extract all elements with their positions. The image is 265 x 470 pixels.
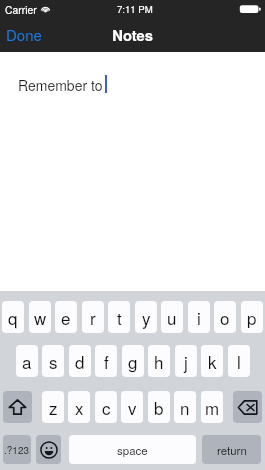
button[interactable]: j	[175, 345, 197, 377]
button[interactable]: space	[69, 435, 196, 464]
staticText: y	[142, 305, 151, 329]
staticText: r	[90, 305, 96, 329]
button[interactable]: w	[29, 301, 51, 333]
staticText: n	[180, 395, 190, 419]
staticText: Remember to	[18, 75, 103, 95]
button[interactable]: Backspace	[233, 391, 262, 423]
button[interactable]: e	[55, 301, 77, 333]
staticText: p	[247, 305, 257, 329]
staticText: i	[197, 305, 201, 329]
staticText: Notes	[0, 24, 265, 45]
button[interactable]: v	[121, 391, 143, 423]
button[interactable]: Done	[6, 24, 42, 45]
button[interactable]: y	[135, 301, 157, 333]
button[interactable]: z	[42, 391, 64, 423]
staticText: j	[184, 349, 188, 373]
button[interactable]: a	[16, 345, 38, 377]
staticText: a	[22, 349, 32, 373]
button[interactable]: o	[214, 301, 236, 333]
staticText: g	[128, 349, 138, 373]
button[interactable]: n	[174, 391, 196, 423]
button[interactable]: q	[2, 301, 24, 333]
button[interactable]: return	[202, 435, 261, 464]
button[interactable]: s	[42, 345, 64, 377]
staticText: o	[220, 305, 230, 329]
button[interactable]: x	[68, 391, 90, 423]
button[interactable]: l	[228, 345, 250, 377]
button[interactable]: p	[241, 301, 263, 333]
staticText: v	[128, 395, 137, 419]
button[interactable]: i	[188, 301, 210, 333]
staticText: space	[117, 442, 148, 458]
staticText: q	[8, 305, 18, 329]
button[interactable]: u	[161, 301, 183, 333]
button[interactable]: h	[148, 345, 170, 377]
staticText: c	[102, 395, 111, 419]
staticText: Carrier	[5, 2, 37, 17]
staticText: .?123	[4, 443, 30, 457]
staticText: t	[117, 305, 122, 329]
button[interactable]: Shift	[3, 391, 32, 423]
button[interactable]: k	[201, 345, 223, 377]
button[interactable]: b	[148, 391, 170, 423]
staticText: d	[75, 349, 85, 373]
staticText: k	[208, 349, 217, 373]
button[interactable]: r	[82, 301, 104, 333]
staticText: e	[61, 305, 71, 329]
staticText: 7:11 PM	[117, 2, 153, 16]
button[interactable]: g	[122, 345, 144, 377]
staticText: b	[154, 395, 164, 419]
staticText: u	[167, 305, 177, 329]
button[interactable]: m	[201, 391, 223, 423]
staticText: return	[217, 442, 247, 458]
button[interactable]: f	[95, 345, 117, 377]
staticText: m	[205, 395, 220, 419]
staticText: f	[104, 349, 109, 373]
staticText: l	[237, 349, 241, 373]
staticText: w	[34, 305, 47, 329]
staticText: h	[154, 349, 164, 373]
button[interactable]: t	[108, 301, 130, 333]
button[interactable]: c	[95, 391, 117, 423]
staticText: s	[49, 349, 58, 373]
button[interactable]: Emoji	[36, 435, 61, 464]
staticText: z	[49, 395, 58, 419]
staticText: Done	[6, 24, 42, 45]
button[interactable]: .?123	[3, 435, 31, 464]
staticText: x	[75, 395, 84, 419]
button[interactable]: d	[69, 345, 91, 377]
